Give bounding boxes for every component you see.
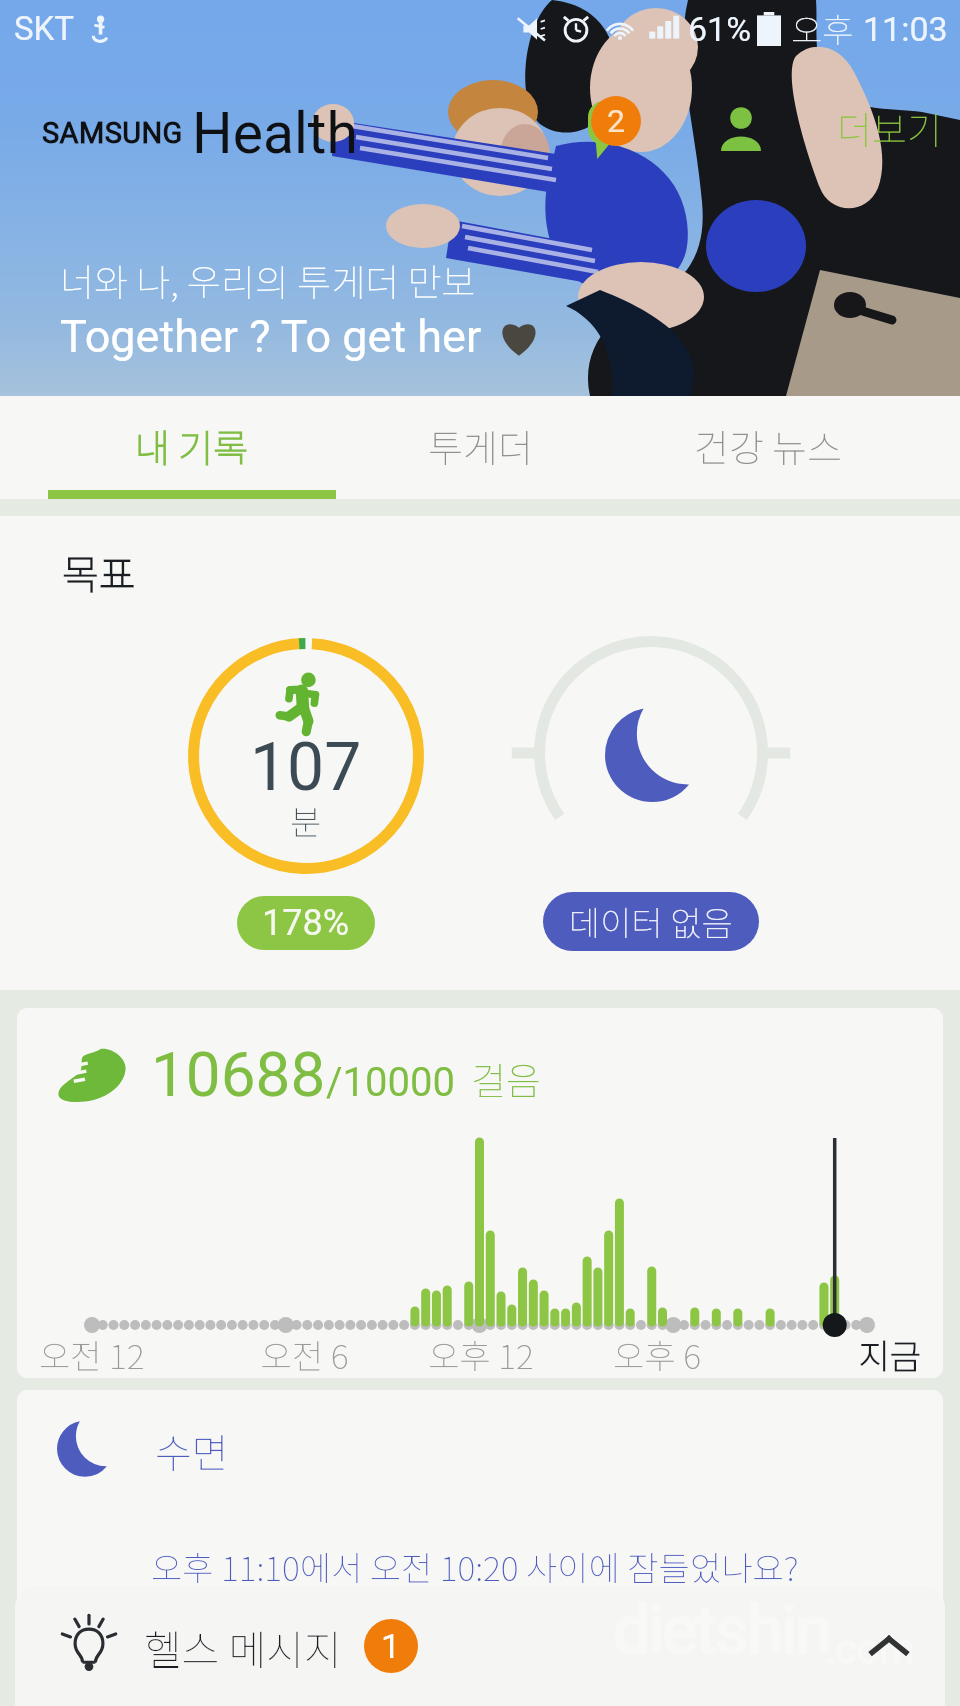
button[interactable]: 내 기록	[48, 396, 336, 499]
staticText: 더보기	[837, 100, 942, 155]
staticText: Health	[192, 100, 358, 167]
button[interactable]: 178%	[237, 896, 375, 950]
staticText: 오후	[791, 4, 854, 53]
staticText: SAMSUNG	[42, 116, 183, 150]
staticText: /10000	[326, 1059, 455, 1106]
staticText: 분	[290, 796, 322, 845]
button[interactable]: 107	[188, 638, 424, 950]
staticText: 2	[607, 102, 625, 140]
staticText: .com	[825, 1626, 915, 1673]
staticText: 목표	[62, 543, 136, 601]
button[interactable]: Profile	[710, 98, 772, 160]
staticText: 11:03	[863, 9, 948, 49]
staticText: Together ? To get her	[60, 310, 493, 363]
staticText: 오후 12	[393, 1330, 569, 1378]
staticText: 1	[381, 1626, 401, 1666]
staticText: 데이터 없음	[569, 897, 733, 946]
button[interactable]: 10688	[17, 1008, 943, 1378]
staticText: 헬스 메시지	[144, 1617, 342, 1676]
staticText: 너와 나, 우리의 투게더 만보	[60, 253, 476, 307]
staticText: 10688	[151, 1038, 326, 1111]
staticText: 내 기록	[135, 418, 249, 473]
staticText: 건강 뉴스	[694, 418, 843, 473]
staticText: SKT	[14, 9, 74, 48]
button[interactable]: dietshin	[15, 1586, 945, 1706]
button[interactable]: 더보기	[832, 92, 947, 163]
button[interactable]: 데이터 없음	[534, 636, 768, 951]
staticText: 수면	[155, 1422, 229, 1480]
button[interactable]: Messages	[575, 88, 659, 172]
staticText: 107	[250, 729, 362, 806]
button[interactable]: 투게더	[336, 396, 624, 499]
staticText: 지금	[745, 1330, 921, 1378]
button[interactable]: 데이터 없음	[543, 892, 759, 951]
staticText: 오전 12	[39, 1330, 216, 1378]
staticText: 투게더	[428, 418, 533, 473]
staticText: 오전 6	[216, 1330, 393, 1378]
other: Expand	[869, 1626, 909, 1666]
staticText: 오후 11:10에서 오전 10:20 사이에 잠들었나요?	[151, 1542, 799, 1591]
button[interactable]: 수면	[17, 1390, 943, 1690]
staticText: 오후 6	[569, 1330, 745, 1378]
button[interactable]: 건강 뉴스	[624, 396, 912, 499]
staticText: 걸음	[471, 1051, 541, 1106]
staticText: 61%	[688, 9, 752, 49]
staticText: 178%	[262, 902, 350, 944]
